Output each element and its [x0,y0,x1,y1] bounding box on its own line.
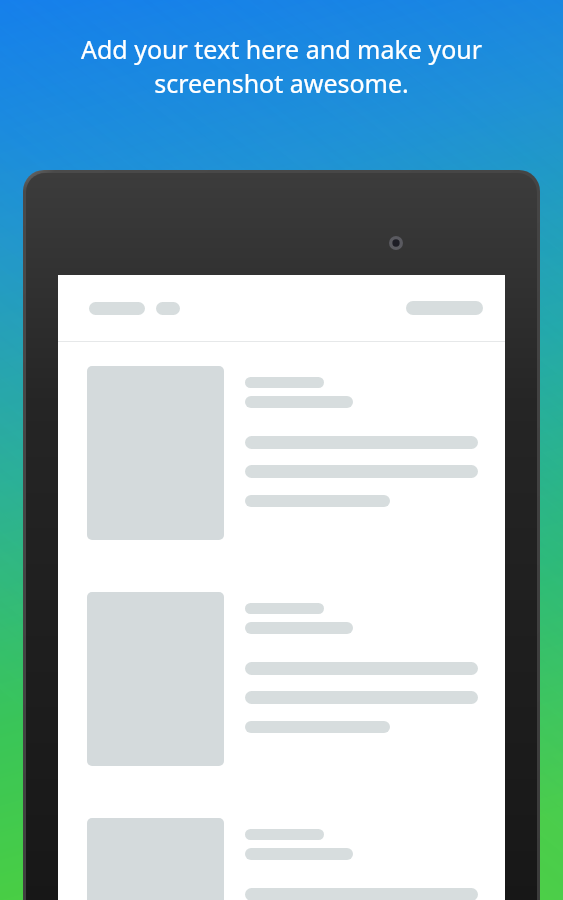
button[interactable] [58,592,505,766]
button[interactable]: Action [406,301,483,315]
button[interactable]: Tab [156,302,180,315]
staticText: Add your text here and make your screens… [18,32,545,100]
button[interactable]: Menu [89,302,145,315]
button[interactable] [58,366,505,540]
button[interactable] [58,818,505,900]
